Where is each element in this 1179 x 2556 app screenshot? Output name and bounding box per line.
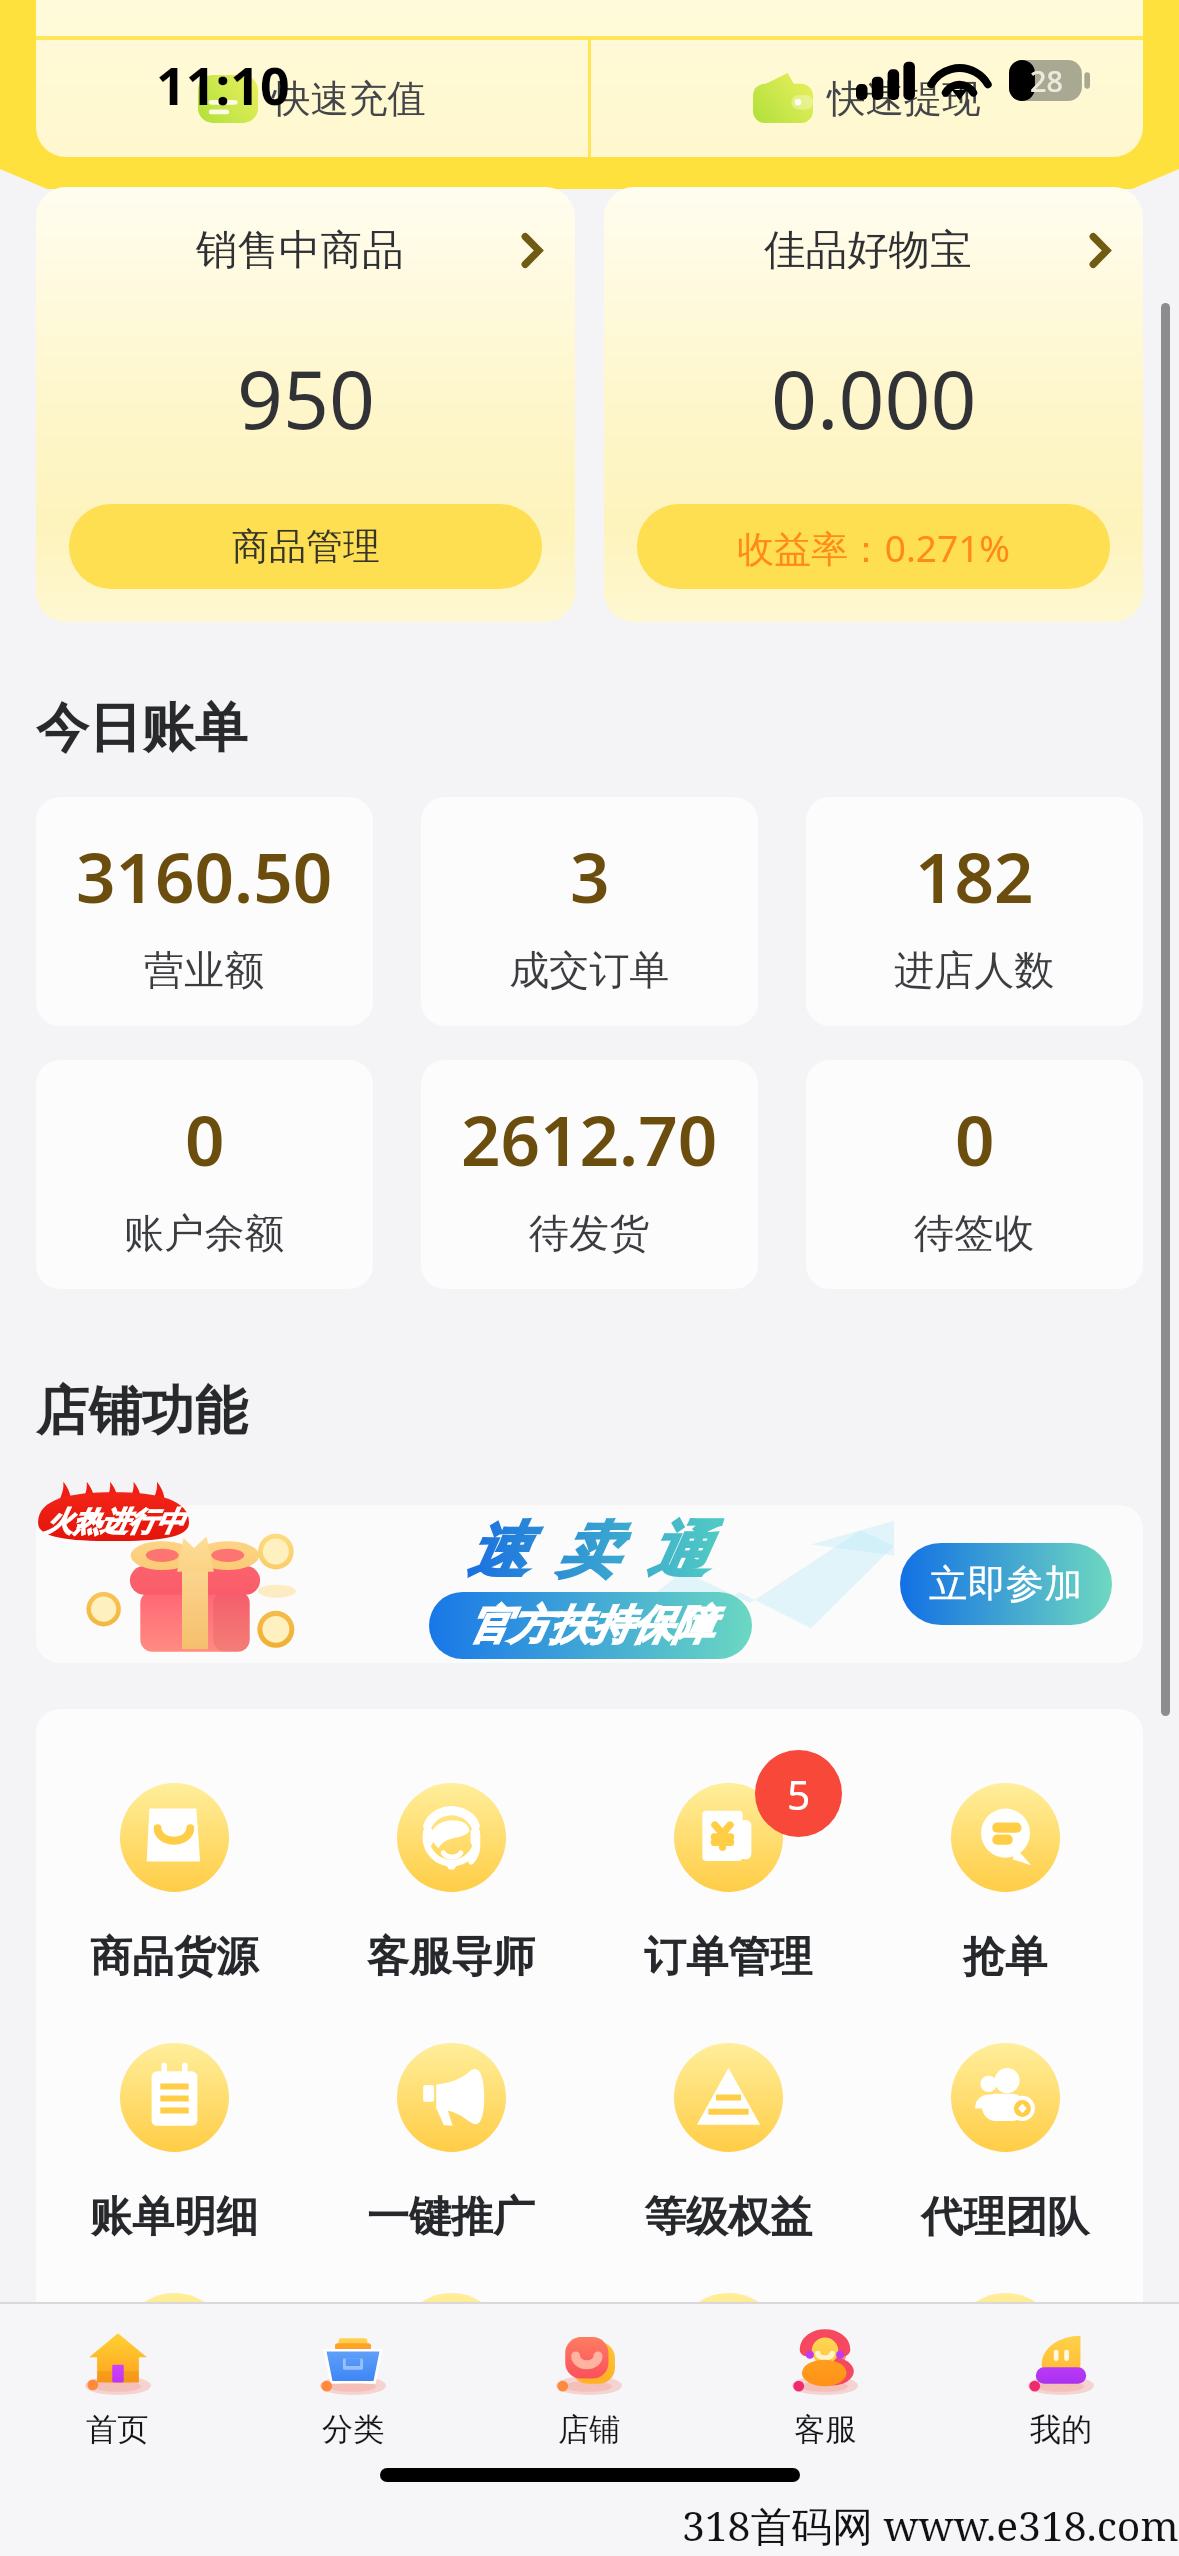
staticText: 首页 <box>86 2410 149 2449</box>
staticText: 速 卖 通 <box>467 1507 715 1589</box>
staticText: 进店人数 <box>894 945 1055 995</box>
staticText: 0 <box>955 1092 995 1186</box>
staticText: 帮助中心 <box>644 2441 812 2494</box>
staticText: 客服导师 <box>367 1931 535 1984</box>
staticText: 火热进行中 <box>45 1504 183 1539</box>
button[interactable]: 我的收藏 <box>36 2293 312 2494</box>
staticText: 店铺 <box>558 2410 621 2449</box>
button[interactable]: 帮助中心 <box>589 2293 866 2494</box>
button[interactable]: 一键推广 <box>312 2043 589 2244</box>
staticText: 950 <box>237 343 375 453</box>
staticText: 营业额 <box>144 945 265 995</box>
button[interactable]: 首页 <box>0 2332 235 2449</box>
staticText: 抢单 <box>963 1931 1047 1984</box>
staticText: 待发货 <box>529 1208 650 1258</box>
button[interactable]: 商品管理 <box>69 504 542 589</box>
staticText: 182 <box>915 829 1034 923</box>
button[interactable]: 等级权益 <box>589 2043 866 2244</box>
button[interactable]: 销售中商品 <box>36 187 575 622</box>
staticText: 分类 <box>322 2410 385 2449</box>
staticText: 收益率：0.271% <box>737 522 1010 572</box>
staticText: 11:10 <box>156 49 290 120</box>
button[interactable]: 商品货源 <box>36 1783 312 1984</box>
staticText: 商品货源 <box>90 1931 258 1984</box>
staticText: 设置 <box>963 2441 1047 2494</box>
staticText: 318首码网 www.e318.com <box>682 2497 1179 2553</box>
staticText: 官方扶持保障 <box>468 1600 713 1651</box>
button[interactable]: 邀请好友 <box>312 2293 589 2494</box>
button[interactable]: 客服 <box>707 2332 943 2449</box>
button[interactable]: 立即参加 <box>900 1543 1112 1625</box>
staticText: 3 <box>570 829 610 923</box>
button[interactable]: 店铺 <box>471 2332 707 2449</box>
staticText: 一键推广 <box>367 2191 535 2244</box>
staticText: 成交订单 <box>509 945 670 995</box>
button[interactable]: 快速充值 <box>36 40 588 157</box>
button[interactable]: 我的 <box>943 2332 1179 2449</box>
staticText: 账单明细 <box>90 2191 258 2244</box>
staticText: 28 <box>1030 61 1063 100</box>
button[interactable]: 0 <box>806 1060 1143 1289</box>
staticText: 我的 <box>1030 2410 1093 2449</box>
staticText: 待签收 <box>914 1208 1035 1258</box>
staticText: 等级权益 <box>644 2191 812 2244</box>
button[interactable]: 快速提现 <box>591 40 1143 157</box>
staticText: 客服 <box>794 2410 857 2449</box>
staticText: 今日账单 <box>36 695 248 762</box>
staticText: 销售中商品 <box>196 224 404 276</box>
button[interactable]: 5 <box>589 1783 866 1984</box>
staticText: 邀请好友 <box>367 2441 535 2494</box>
button[interactable]: 佳品好物宝 <box>604 187 1143 622</box>
staticText: 账户余额 <box>124 1208 285 1258</box>
button[interactable]: 客服导师 <box>312 1783 589 1984</box>
staticText: 我的收藏 <box>90 2441 258 2494</box>
button[interactable]: 速 卖 通 <box>36 1505 1143 1663</box>
button[interactable]: 抢单 <box>866 1783 1143 1984</box>
button[interactable]: 2612.70 <box>421 1060 758 1289</box>
button[interactable]: 3 <box>421 797 758 1026</box>
staticText: 0 <box>185 1092 225 1186</box>
button[interactable]: 3160.50 <box>36 797 373 1026</box>
staticText: 0.000 <box>771 343 977 453</box>
staticText: 佳品好物宝 <box>764 224 972 276</box>
staticText: 5 <box>787 1766 811 1822</box>
staticText: 代理团队 <box>921 2191 1089 2244</box>
button[interactable]: 分类 <box>235 2332 471 2449</box>
staticText: 立即参加 <box>929 1560 1083 1608</box>
button[interactable]: 代理团队 <box>866 2043 1143 2244</box>
staticText: 店铺功能 <box>36 1378 248 1445</box>
button[interactable]: 182 <box>806 797 1143 1026</box>
staticText: 商品管理 <box>232 523 380 570</box>
staticText: 订单管理 <box>644 1931 812 1984</box>
button[interactable]: 0 <box>36 1060 373 1289</box>
staticText: 3160.50 <box>76 829 333 923</box>
staticText: 2612.70 <box>461 1092 718 1186</box>
button[interactable]: 账单明细 <box>36 2043 312 2244</box>
staticText: 快速提现 <box>827 75 981 123</box>
staticText: 快速充值 <box>272 75 426 123</box>
button[interactable]: 设置 <box>866 2293 1143 2494</box>
button[interactable]: 收益率：0.271% <box>637 504 1110 589</box>
